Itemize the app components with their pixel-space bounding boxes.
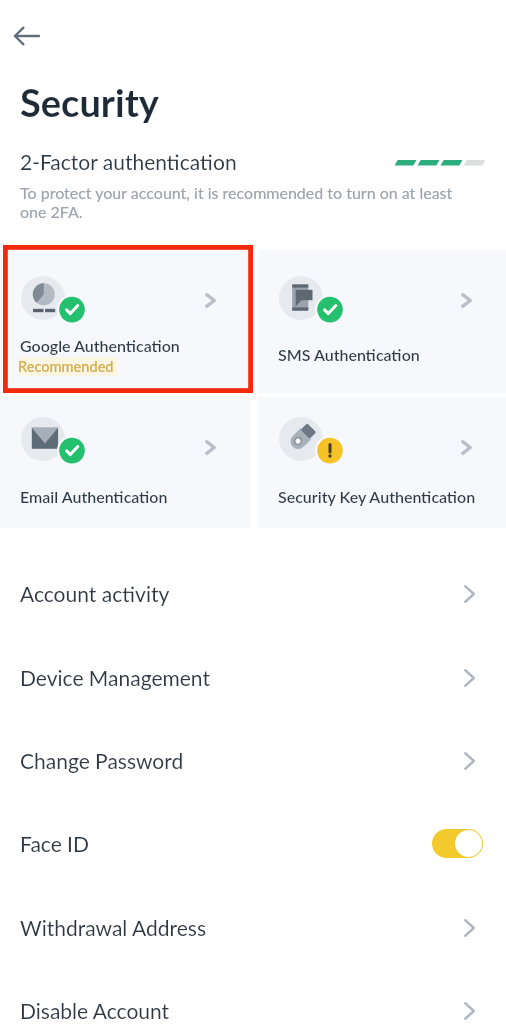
staticText: Withdrawal Address <box>20 915 206 940</box>
staticText: 2-Factor authentication <box>20 149 237 174</box>
staticText: Account activity <box>20 581 170 606</box>
staticText: Recommended <box>18 358 114 375</box>
staticText: Security <box>20 79 159 125</box>
button[interactable]: Face ID <box>0 802 506 885</box>
button[interactable]: Withdrawal Address <box>0 886 506 969</box>
staticText: SMS Authentication <box>278 345 420 364</box>
button[interactable]: SMS Authentication <box>258 250 506 393</box>
staticText: Change Password <box>20 748 184 773</box>
staticText: Security Key Authentication <box>278 487 476 506</box>
button[interactable]: Account activity <box>0 552 506 635</box>
button[interactable]: Change Password <box>0 719 506 802</box>
staticText: Face ID <box>20 831 89 856</box>
staticText: Email Authentication <box>20 487 168 506</box>
button[interactable]: Security Key Authentication <box>258 397 506 528</box>
button[interactable]: Device Management <box>0 636 506 719</box>
staticText: Google Authentication <box>20 336 180 355</box>
button[interactable]: Disable Account <box>0 969 506 1024</box>
staticText: Disable Account <box>20 998 170 1023</box>
button[interactable]: Email Authentication <box>0 397 250 528</box>
staticText: To protect your account, it is recommend… <box>20 183 460 222</box>
button[interactable]: Back <box>7 16 47 56</box>
button[interactable]: Google Authentication <box>0 250 250 393</box>
staticText: Device Management <box>20 665 210 690</box>
button[interactable]: Face ID toggle <box>432 829 483 858</box>
